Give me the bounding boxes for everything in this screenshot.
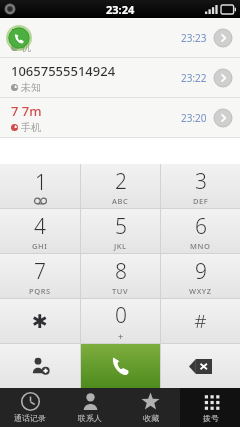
button[interactable]: Call bbox=[6, 25, 32, 51]
staticText: ABC bbox=[112, 196, 129, 206]
staticText: ✱ bbox=[32, 310, 48, 332]
button[interactable]: 1 bbox=[0, 164, 80, 208]
button[interactable]: Delete bbox=[161, 344, 240, 388]
staticText: 5 bbox=[115, 212, 127, 241]
staticText: 3 bbox=[195, 167, 207, 196]
button[interactable]: ✱ bbox=[0, 299, 80, 343]
staticText: 4 bbox=[34, 212, 46, 241]
staticText: m bbox=[11, 22, 24, 40]
button[interactable]: 10657555514924 bbox=[0, 58, 240, 97]
button[interactable]: 2 bbox=[81, 164, 160, 208]
staticText: GHI bbox=[32, 241, 48, 251]
staticText: 23:23 bbox=[181, 31, 207, 45]
staticText: 手机 bbox=[21, 121, 41, 134]
button[interactable]: 8 bbox=[81, 254, 160, 298]
staticText: 0 bbox=[115, 301, 127, 330]
button[interactable]: 拨号 bbox=[180, 388, 240, 427]
button[interactable]: 4 bbox=[0, 209, 80, 253]
button[interactable]: # bbox=[161, 299, 240, 343]
staticText: JKL bbox=[114, 241, 127, 251]
staticText: 9 bbox=[195, 257, 207, 286]
staticText: 通话记录 bbox=[14, 413, 46, 423]
button[interactable]: 收藏 bbox=[120, 388, 180, 427]
button[interactable]: 6 bbox=[161, 209, 240, 253]
button[interactable]: Details bbox=[214, 29, 232, 47]
staticText: 1 bbox=[35, 168, 47, 197]
staticText: MNO bbox=[190, 241, 211, 251]
staticText: # bbox=[194, 308, 207, 334]
staticText: 7 7m bbox=[11, 102, 42, 120]
button[interactable]: 联系人 bbox=[60, 388, 120, 427]
button[interactable]: 通话记录 bbox=[0, 388, 60, 427]
button[interactable]: Add contact bbox=[0, 344, 80, 388]
button[interactable]: 3 bbox=[161, 164, 240, 208]
staticText: 2 bbox=[115, 167, 127, 196]
staticText: PQRS bbox=[29, 286, 51, 296]
button[interactable]: Call bbox=[81, 344, 160, 388]
button[interactable]: m bbox=[0, 18, 240, 57]
staticText: 23:20 bbox=[181, 111, 207, 125]
button[interactable]: 0 bbox=[81, 299, 160, 343]
staticText: 收藏 bbox=[143, 413, 159, 423]
button[interactable]: Details bbox=[214, 69, 232, 87]
staticText: 23:22 bbox=[181, 71, 207, 85]
staticText: TUV bbox=[112, 286, 129, 296]
staticText: 机 bbox=[21, 41, 31, 54]
button[interactable]: 5 bbox=[81, 209, 160, 253]
staticText: 拨号 bbox=[203, 413, 219, 423]
staticText: 23:24 bbox=[106, 2, 135, 17]
button[interactable]: 7 bbox=[0, 254, 80, 298]
staticText: 8 bbox=[115, 257, 127, 286]
staticText: 未知 bbox=[21, 81, 41, 94]
staticText: WXYZ bbox=[189, 286, 212, 296]
staticText: 7 bbox=[34, 257, 46, 286]
staticText: + bbox=[118, 330, 124, 342]
button[interactable]: Details bbox=[214, 109, 232, 127]
staticText: 6 bbox=[195, 212, 207, 241]
button[interactable]: 7 7m bbox=[0, 98, 240, 137]
staticText: 联系人 bbox=[78, 413, 102, 423]
staticText: 10657555514924 bbox=[11, 62, 116, 80]
button[interactable]: 9 bbox=[161, 254, 240, 298]
staticText: DEF bbox=[193, 196, 209, 206]
